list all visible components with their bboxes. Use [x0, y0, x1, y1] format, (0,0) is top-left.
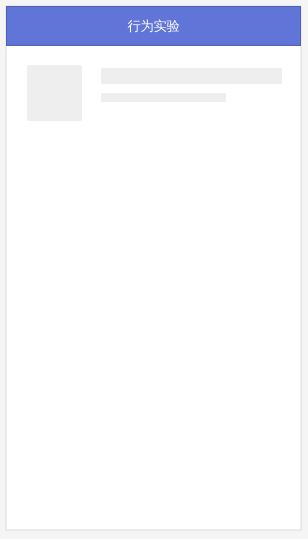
staticText: 行为实验	[127, 18, 179, 34]
button[interactable]: Loading item	[6, 65, 301, 121]
